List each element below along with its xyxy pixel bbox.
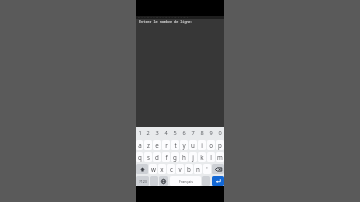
button[interactable]: f bbox=[162, 152, 170, 162]
button[interactable]: o bbox=[207, 140, 215, 150]
staticText: r bbox=[165, 141, 168, 149]
staticText: d bbox=[155, 153, 159, 161]
button[interactable]: ' bbox=[203, 164, 211, 174]
button[interactable]: 7 bbox=[188, 127, 197, 139]
button[interactable]: n bbox=[194, 164, 202, 174]
staticText: 1 bbox=[138, 129, 142, 137]
staticText: 6 bbox=[182, 129, 186, 137]
button[interactable]: 6 bbox=[179, 127, 188, 139]
staticText: m bbox=[217, 153, 223, 161]
staticText: y bbox=[182, 141, 186, 149]
staticText: f bbox=[165, 153, 168, 161]
staticText: ' bbox=[206, 165, 208, 173]
button[interactable]: Backspace bbox=[212, 164, 224, 174]
staticText: 8 bbox=[200, 129, 204, 137]
button[interactable]: m bbox=[216, 152, 224, 162]
staticText: j bbox=[192, 153, 194, 161]
staticText: v bbox=[178, 165, 182, 173]
staticText: 0 bbox=[218, 129, 222, 137]
button[interactable]: b bbox=[185, 164, 193, 174]
button[interactable]: ?123 bbox=[136, 176, 149, 186]
button[interactable]: x bbox=[158, 164, 166, 174]
staticText: b bbox=[187, 165, 191, 173]
staticText: z bbox=[147, 141, 150, 149]
button[interactable]: u bbox=[189, 140, 197, 150]
button[interactable]: 5 bbox=[170, 127, 179, 139]
staticText: q bbox=[138, 153, 142, 161]
button[interactable]: Change language bbox=[159, 176, 168, 186]
button[interactable]: Français bbox=[170, 176, 201, 186]
staticText: 3 bbox=[155, 129, 159, 137]
staticText: 5 bbox=[173, 129, 177, 137]
button[interactable]: z bbox=[144, 140, 152, 150]
staticText: k bbox=[200, 153, 204, 161]
button[interactable]: k bbox=[198, 152, 206, 162]
staticText: n bbox=[196, 165, 200, 173]
staticText: 2 bbox=[146, 129, 150, 137]
button[interactable]: j bbox=[189, 152, 197, 162]
staticText: Français bbox=[179, 179, 193, 184]
staticText: c bbox=[170, 165, 173, 173]
button[interactable]: d bbox=[153, 152, 161, 162]
staticText: i bbox=[201, 141, 203, 149]
button[interactable]: Shift bbox=[136, 164, 148, 174]
button[interactable]: g bbox=[171, 152, 179, 162]
staticText: ?123 bbox=[139, 179, 147, 184]
button[interactable]: i bbox=[198, 140, 206, 150]
button[interactable]: y bbox=[180, 140, 188, 150]
button[interactable]: e bbox=[153, 140, 161, 150]
staticText: 4 bbox=[164, 129, 168, 137]
button[interactable]: w bbox=[149, 164, 157, 174]
button[interactable]: s bbox=[144, 152, 152, 162]
staticText: h bbox=[182, 153, 186, 161]
button[interactable]: 9 bbox=[206, 127, 215, 139]
staticText: g bbox=[173, 153, 177, 161]
button[interactable]: 4 bbox=[161, 127, 170, 139]
staticText: t bbox=[174, 141, 177, 149]
staticText: x bbox=[160, 165, 164, 173]
button[interactable]: Enter bbox=[212, 176, 224, 186]
button[interactable]: l bbox=[207, 152, 215, 162]
button[interactable]: r bbox=[162, 140, 170, 150]
button[interactable]: 2 bbox=[144, 127, 152, 139]
staticText: 9 bbox=[209, 129, 213, 137]
button[interactable]: 8 bbox=[197, 127, 206, 139]
staticText: w bbox=[151, 165, 156, 173]
staticText: l bbox=[210, 153, 212, 161]
staticText: o bbox=[209, 141, 213, 149]
button[interactable]: 0 bbox=[215, 127, 224, 139]
staticText: e bbox=[155, 141, 159, 149]
button[interactable]: 1 bbox=[136, 127, 144, 139]
button[interactable]: c bbox=[167, 164, 175, 174]
staticText: a bbox=[138, 141, 142, 149]
button[interactable]: p bbox=[216, 140, 224, 150]
staticText: s bbox=[147, 153, 150, 161]
button[interactable]: a bbox=[136, 140, 143, 150]
button[interactable]: h bbox=[180, 152, 188, 162]
staticText: 7 bbox=[191, 129, 195, 137]
staticText: p bbox=[218, 141, 222, 149]
button[interactable]: 3 bbox=[152, 127, 161, 139]
button[interactable]: q bbox=[136, 152, 143, 162]
button[interactable]: v bbox=[176, 164, 184, 174]
button[interactable]: t bbox=[171, 140, 179, 150]
staticText: Entrer le nombre de ligne: bbox=[139, 19, 193, 24]
staticText: u bbox=[191, 141, 195, 149]
